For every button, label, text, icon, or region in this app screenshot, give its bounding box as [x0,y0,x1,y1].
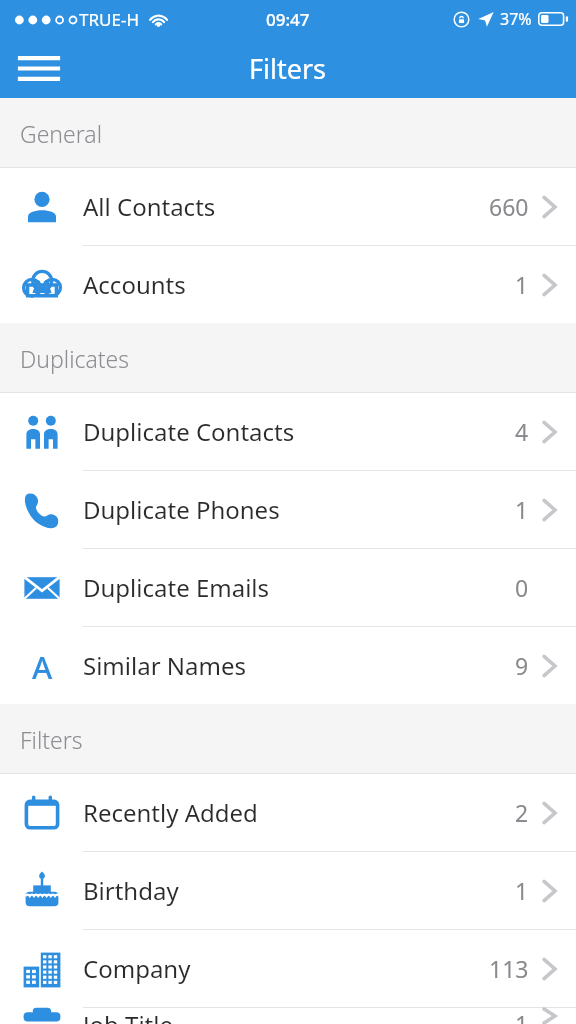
staticText: A [32,646,53,686]
button[interactable]: Accounts [0,246,576,323]
staticText: 4 [515,416,529,447]
staticText: 9 [515,650,529,681]
button[interactable]: Menu [0,38,78,98]
staticText: Accounts [83,268,186,301]
button[interactable]: Company [0,930,576,1007]
staticText: 09:47 [266,8,310,31]
staticText: 37% [500,8,532,30]
staticText: Duplicate Phones [83,493,280,526]
staticText: 1 [515,494,529,525]
button[interactable]: Birthday [0,852,576,929]
button[interactable]: Duplicate Phones [0,471,576,548]
staticText: Filters [20,724,83,755]
staticText: Birthday [83,874,179,907]
staticText: 1 [515,875,529,906]
staticText: Filters [249,50,327,87]
button[interactable]: All Contacts [0,168,576,245]
button[interactable]: Job Title [0,1008,576,1024]
staticText: Recently Added [83,796,258,829]
staticText: Job Title [83,1008,173,1024]
staticText: 2 [515,797,529,828]
staticText: All Contacts [83,190,216,223]
staticText: General [20,118,102,149]
staticText: TRUE-H [79,8,139,31]
staticText: Duplicates [20,343,130,374]
staticText: Company [83,952,191,985]
staticText: 0 [515,572,529,603]
button[interactable]: A [0,627,576,704]
staticText: 660 [489,191,529,222]
staticText: Similar Names [83,649,246,682]
button[interactable]: Duplicate Emails [0,549,576,626]
button[interactable]: Duplicate Contacts [0,393,576,470]
staticText: 1 [515,1008,529,1024]
staticText: 113 [489,953,529,984]
staticText: 1 [515,269,529,300]
button[interactable]: Recently Added [0,774,576,851]
staticText: Duplicate Emails [83,571,270,604]
staticText: Duplicate Contacts [83,415,295,448]
